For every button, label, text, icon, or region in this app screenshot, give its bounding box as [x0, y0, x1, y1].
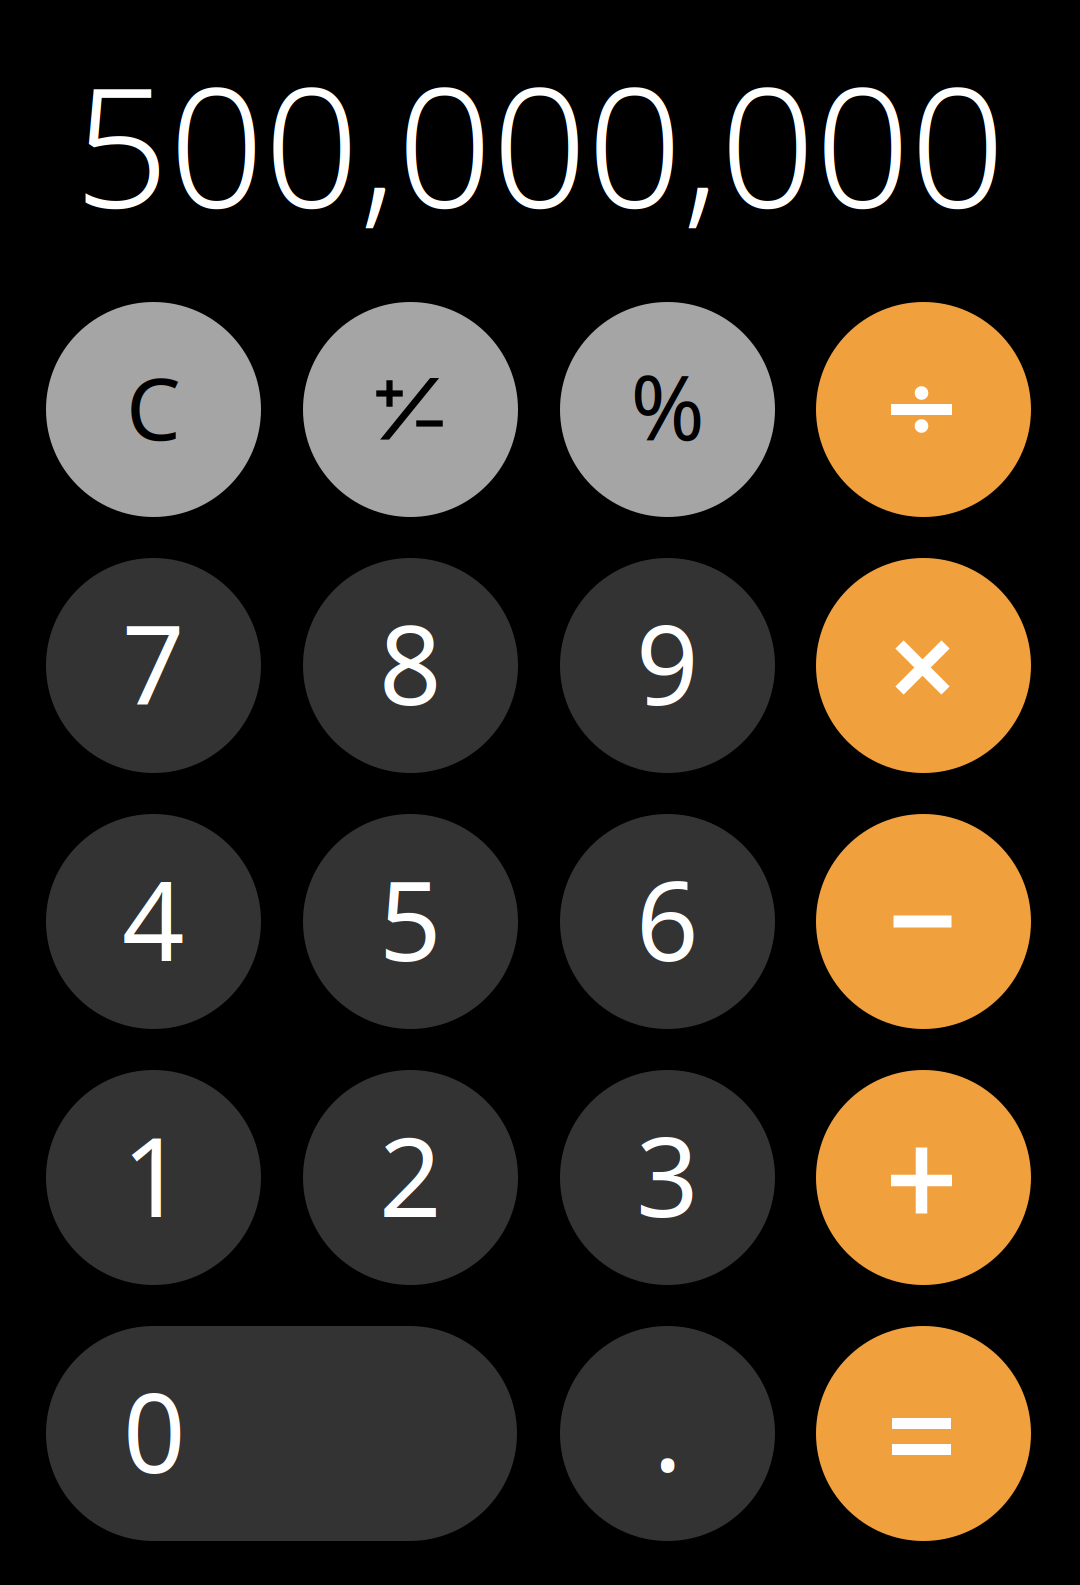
button[interactable]: 4 — [46, 814, 261, 1029]
button[interactable]: 5 — [303, 814, 518, 1029]
button[interactable]: Equals — [816, 1326, 1031, 1541]
staticText: 3 — [636, 1102, 699, 1247]
button[interactable]: 9 — [560, 558, 775, 773]
staticText: % — [630, 346, 704, 465]
staticText: 1 — [122, 1102, 185, 1247]
button[interactable]: 7 — [46, 558, 261, 773]
staticText: 7 — [122, 590, 185, 735]
button[interactable]: 8 — [303, 558, 518, 773]
button[interactable]: . — [560, 1326, 775, 1541]
staticText: 4 — [122, 846, 185, 991]
staticText: 0 — [123, 1358, 186, 1503]
button[interactable]: Divide — [816, 302, 1031, 517]
button[interactable]: Subtract — [816, 814, 1031, 1029]
staticText: C — [126, 349, 181, 464]
button[interactable]: Add — [816, 1070, 1031, 1285]
button[interactable]: Plus minus, toggle sign — [303, 302, 518, 517]
button[interactable]: % — [560, 302, 775, 517]
staticText: 500,000,000 — [74, 32, 1005, 253]
button[interactable]: 3 — [560, 1070, 775, 1285]
button[interactable]: Multiply — [816, 558, 1031, 773]
staticText: 6 — [636, 846, 699, 991]
staticText: 2 — [379, 1102, 442, 1247]
button[interactable]: 0 — [46, 1326, 517, 1541]
staticText: 8 — [379, 590, 442, 735]
staticText: . — [653, 1356, 682, 1501]
button[interactable]: 6 — [560, 814, 775, 1029]
button[interactable]: 1 — [46, 1070, 261, 1285]
button[interactable]: C — [46, 302, 261, 517]
staticText: 5 — [379, 846, 442, 991]
staticText: 9 — [636, 590, 699, 735]
button[interactable]: 2 — [303, 1070, 518, 1285]
